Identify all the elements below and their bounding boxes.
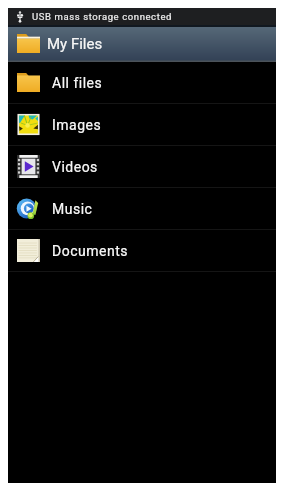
button[interactable]: Videos	[8, 146, 276, 187]
button[interactable]: Images	[8, 104, 276, 145]
staticText: My Files	[47, 35, 103, 53]
button[interactable]: All files	[8, 62, 276, 103]
button[interactable]: My Files	[8, 25, 276, 62]
staticText: USB mass storage connected	[32, 11, 172, 22]
staticText: Videos	[52, 159, 98, 175]
button[interactable]: Music	[8, 188, 276, 229]
staticText: Music	[52, 201, 93, 217]
button[interactable]: Documents	[8, 230, 276, 271]
other: USB connected	[16, 11, 24, 23]
staticText: Documents	[52, 243, 128, 259]
staticText: All files	[52, 75, 103, 91]
staticText: Images	[52, 117, 102, 133]
